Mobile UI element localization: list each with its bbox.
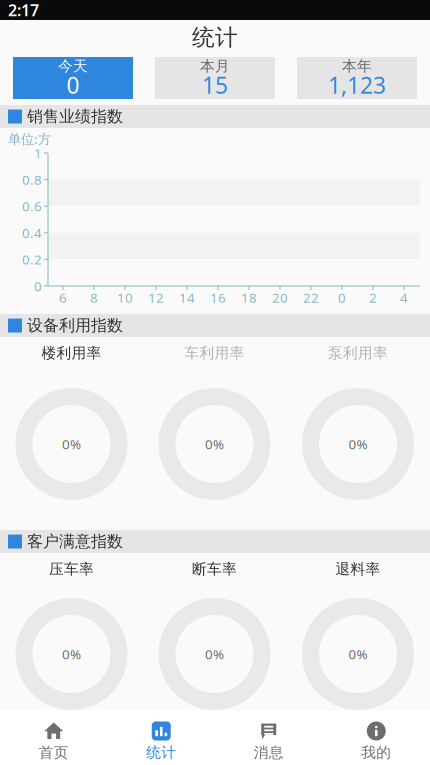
- staticText: 楼利用率: [41, 344, 101, 362]
- staticText: 车利用率: [184, 344, 244, 362]
- staticText: 0: [338, 289, 346, 306]
- staticText: 8: [90, 289, 98, 306]
- staticText: 今天: [58, 57, 88, 75]
- staticText: 1,123: [328, 70, 386, 100]
- staticText: 20: [272, 289, 288, 306]
- staticText: 6: [59, 289, 67, 306]
- staticText: 单位:方: [8, 130, 51, 148]
- staticText: 2: [369, 289, 377, 306]
- staticText: 压车率: [49, 560, 94, 578]
- staticText: 退料率: [335, 560, 380, 578]
- staticText: 4: [400, 289, 408, 306]
- staticText: 0%: [205, 435, 224, 453]
- button[interactable]: 楼利用率: [0, 340, 143, 366]
- staticText: 0.6: [22, 197, 42, 215]
- staticText: 首页: [39, 743, 69, 761]
- staticText: 统计: [146, 743, 176, 761]
- button[interactable]: 退料率: [286, 556, 430, 582]
- staticText: 客户满意指数: [27, 532, 123, 551]
- staticText: 0%: [348, 645, 367, 663]
- button[interactable]: 车利用率: [143, 340, 286, 366]
- staticText: 0%: [62, 435, 81, 453]
- button[interactable]: 消息: [215, 710, 322, 765]
- button[interactable]: 压车率: [0, 556, 143, 582]
- button[interactable]: 本月: [155, 57, 275, 99]
- staticText: 0: [34, 277, 42, 295]
- staticText: 10: [117, 289, 133, 306]
- staticText: 消息: [254, 743, 284, 761]
- staticText: 设备利用指数: [27, 316, 123, 335]
- staticText: 本年: [342, 57, 372, 75]
- staticText: 销售业绩指数: [27, 107, 123, 126]
- button[interactable]: 统计: [107, 710, 215, 765]
- staticText: 0%: [348, 435, 367, 453]
- staticText: 断车率: [192, 560, 237, 578]
- staticText: 0.8: [22, 171, 42, 188]
- staticText: 16: [210, 289, 226, 306]
- button[interactable]: 今天: [13, 57, 133, 99]
- staticText: 0%: [62, 645, 81, 663]
- button[interactable]: 断车率: [143, 556, 286, 582]
- staticText: 统计: [192, 24, 238, 51]
- button[interactable]: 泵利用率: [286, 340, 430, 366]
- staticText: 18: [241, 289, 257, 306]
- staticText: 本月: [200, 57, 230, 75]
- staticText: 14: [179, 289, 195, 306]
- staticText: 0: [66, 70, 79, 100]
- button[interactable]: 我的: [322, 710, 430, 765]
- staticText: 1: [34, 144, 42, 162]
- staticText: 0%: [205, 645, 224, 663]
- staticText: 泵利用率: [328, 344, 388, 362]
- staticText: 0.2: [22, 250, 42, 268]
- button[interactable]: 首页: [0, 710, 107, 765]
- staticText: 15: [202, 70, 228, 100]
- staticText: 我的: [361, 743, 391, 761]
- button[interactable]: 本年: [297, 57, 417, 99]
- staticText: 0.4: [22, 224, 42, 242]
- staticText: 12: [148, 289, 164, 306]
- staticText: 22: [303, 289, 319, 306]
- staticText: 2:17: [8, 0, 39, 21]
